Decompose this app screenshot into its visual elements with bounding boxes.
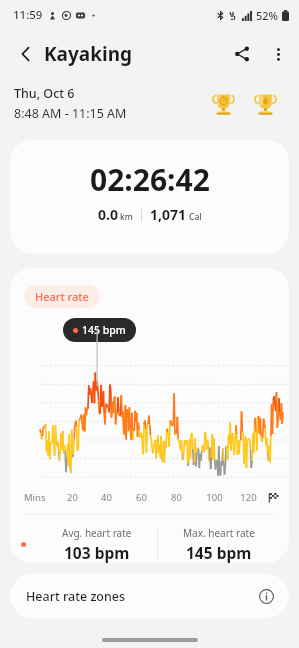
- staticText: Heart rate zones: [26, 588, 126, 605]
- button[interactable]: Calorie record: [251, 89, 279, 117]
- staticText: Mins: [24, 491, 46, 504]
- staticText: 145 bpm: [186, 542, 252, 563]
- button[interactable]: Heart rate: [10, 268, 289, 563]
- staticText: 40: [101, 491, 112, 504]
- staticText: Avg. heart rate: [62, 526, 132, 540]
- button[interactable]: Back: [8, 36, 44, 72]
- staticText: 80: [171, 491, 182, 504]
- button[interactable]: Duration record: [209, 89, 237, 117]
- staticText: 103 bpm: [64, 542, 130, 563]
- staticText: 120: [240, 491, 257, 504]
- staticText: 1,071: [150, 205, 187, 224]
- staticText: Thu, Oct 6: [14, 85, 75, 102]
- staticText: 60: [136, 491, 147, 504]
- staticText: Max. heart rate: [183, 526, 255, 540]
- button[interactable]: Information about heart rate zones: [253, 583, 279, 609]
- staticText: 11:59: [13, 7, 43, 23]
- button[interactable]: More options: [261, 37, 295, 71]
- staticText: 8:48 AM - 11:15 AM: [14, 105, 127, 122]
- staticText: 20: [67, 491, 78, 504]
- button[interactable]: Heart rate: [24, 285, 100, 308]
- staticText: 02:26:42: [90, 159, 210, 200]
- staticText: 145 bpm: [82, 323, 126, 337]
- staticText: 0.0: [98, 205, 118, 224]
- staticText: Cal: [189, 211, 202, 223]
- staticText: 100: [206, 491, 223, 504]
- button[interactable]: Share: [223, 35, 261, 73]
- button[interactable]: Heart rate zones: [10, 574, 289, 618]
- staticText: km: [120, 211, 133, 223]
- staticText: 52%: [256, 8, 278, 23]
- button[interactable]: 02:26:42: [10, 140, 289, 254]
- staticText: Heart rate: [35, 289, 89, 304]
- staticText: Kayaking: [44, 41, 133, 67]
